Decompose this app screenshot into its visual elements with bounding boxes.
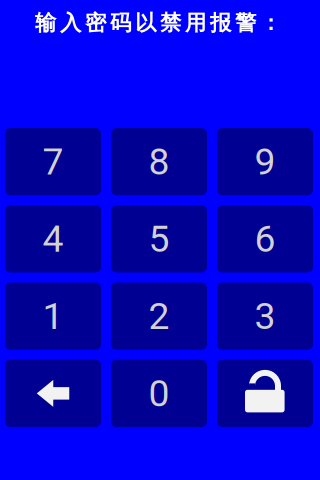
- button[interactable]: 9: [217, 128, 313, 195]
- staticText: 2: [148, 294, 169, 338]
- staticText: 5: [148, 217, 169, 261]
- button[interactable]: 4: [5, 205, 101, 272]
- staticText: 8: [148, 140, 169, 183]
- button[interactable]: 2: [111, 282, 207, 350]
- button[interactable]: 5: [111, 205, 207, 272]
- staticText: 输 入 密 码 以 禁 用 报 警 ：: [35, 10, 281, 36]
- staticText: 7: [42, 140, 63, 183]
- button[interactable]: 1: [5, 282, 101, 350]
- button[interactable]: 3: [217, 282, 313, 350]
- button[interactable]: 0: [111, 360, 207, 427]
- button[interactable]: 6: [217, 205, 313, 272]
- staticText: 1: [42, 294, 63, 338]
- button[interactable]: 8: [111, 128, 207, 195]
- staticText: 9: [254, 140, 275, 183]
- staticText: 6: [254, 217, 275, 261]
- button[interactable]: 7: [5, 128, 101, 195]
- staticText: 4: [42, 217, 63, 261]
- button[interactable]: Delete: [5, 360, 101, 427]
- staticText: 3: [254, 294, 275, 338]
- staticText: 0: [148, 371, 169, 415]
- button[interactable]: Unlock: [217, 360, 313, 427]
